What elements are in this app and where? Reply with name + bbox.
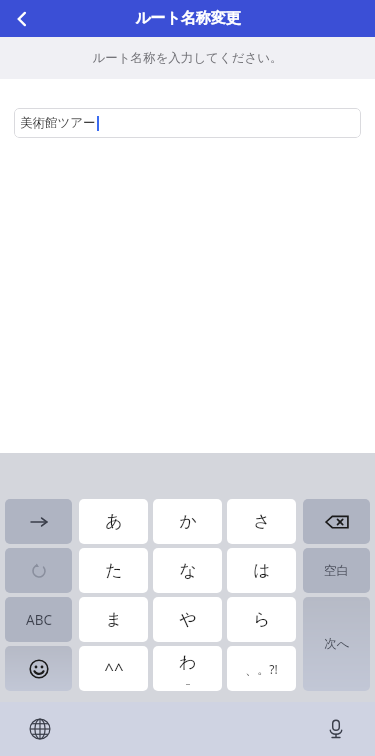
staticText: ら [253,609,271,630]
button[interactable]: は [227,548,296,593]
staticText: わ [179,652,197,673]
button[interactable]: Undo [5,548,72,593]
other: Emoji [29,659,49,679]
button[interactable]: さ [227,499,296,544]
staticText: は [253,560,271,581]
staticText: た [105,560,123,581]
staticText: 美術館ツアー [20,115,96,131]
staticText: _ [186,673,190,685]
staticText: さ [253,511,271,532]
other: Backspace [324,509,350,535]
staticText: 空白 [324,563,349,579]
staticText: ABC [26,611,52,629]
staticText: ルート名称変更 [135,9,241,28]
staticText: ルート名称を入力してください。 [92,50,283,66]
button[interactable]: Backspace [303,499,370,544]
button[interactable]: Emoji [5,646,72,691]
button[interactable]: Voice input [316,709,356,749]
staticText: な [179,560,197,581]
button[interactable]: ま [79,597,148,642]
staticText: あ [105,511,123,532]
button[interactable]: Next character [5,499,72,544]
other: Undo [29,561,49,581]
button[interactable]: ^^ [79,646,148,691]
button[interactable]: た [79,548,148,593]
staticText: 次へ [324,636,350,652]
button[interactable]: 美術館ツアー [14,108,361,138]
button[interactable]: Back [0,0,44,37]
button[interactable]: や [153,597,222,642]
button[interactable]: 次へ [303,597,370,691]
button[interactable]: Change keyboard language [20,709,60,749]
button[interactable]: 空白 [303,548,370,593]
button[interactable]: あ [79,499,148,544]
button[interactable]: ABC [5,597,72,642]
staticText: ^^ [104,657,124,680]
other: Next character [28,511,50,533]
staticText: や [179,609,197,630]
staticText: ま [105,609,123,630]
staticText: 、。?! [245,661,278,677]
button[interactable]: 、。?! [227,646,296,691]
staticText: か [179,511,197,532]
button[interactable]: な [153,548,222,593]
button[interactable]: わ [153,646,222,691]
button[interactable]: か [153,499,222,544]
button[interactable]: ら [227,597,296,642]
